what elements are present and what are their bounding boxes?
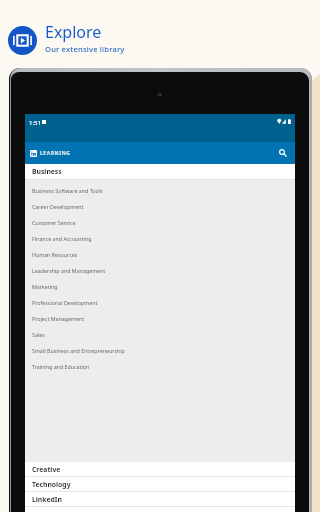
button[interactable]: Customer Service bbox=[25, 214, 295, 230]
staticText: Business Software and Tools bbox=[32, 187, 103, 194]
button[interactable]: LinkedIn bbox=[25, 492, 295, 507]
button[interactable]: Marketing bbox=[25, 278, 295, 294]
staticText: Training and Education bbox=[32, 363, 90, 370]
staticText: Career Development bbox=[32, 203, 84, 210]
staticText: Customer Service bbox=[32, 219, 76, 226]
staticText: Creative bbox=[32, 465, 61, 474]
staticText: Business bbox=[32, 167, 62, 176]
staticText: Project Management bbox=[32, 315, 85, 322]
button[interactable]: Business bbox=[25, 164, 295, 180]
button[interactable]: Project Management bbox=[25, 310, 295, 326]
button[interactable]: Training and Education bbox=[25, 358, 295, 374]
button[interactable]: Human Resources bbox=[25, 246, 295, 262]
button[interactable]: Professional Development bbox=[25, 294, 295, 310]
staticText: 1:51 bbox=[29, 119, 41, 127]
staticText: Human Resources bbox=[32, 251, 78, 258]
staticText: Finance and Accounting bbox=[32, 235, 92, 242]
button[interactable]: Technology bbox=[25, 477, 295, 492]
staticText: Our extensive library bbox=[45, 44, 125, 54]
button[interactable]: Explore bbox=[8, 26, 37, 55]
button[interactable]: Career Development bbox=[25, 198, 295, 214]
staticText: Professional Development bbox=[32, 299, 98, 306]
button[interactable]: Sales bbox=[25, 326, 295, 342]
button[interactable]: Creative bbox=[25, 462, 295, 477]
staticText: Marketing bbox=[32, 283, 58, 290]
staticText: LinkedIn bbox=[32, 495, 62, 504]
staticText: Explore bbox=[45, 21, 102, 43]
staticText: Leadership and Management bbox=[32, 267, 106, 274]
button[interactable]: Leadership and Management bbox=[25, 262, 295, 278]
staticText: Technology bbox=[32, 480, 71, 489]
staticText: Small Business and Entrepreneurship bbox=[32, 347, 125, 354]
button[interactable]: Business Software and Tools bbox=[25, 182, 295, 198]
staticText: Sales bbox=[32, 331, 45, 338]
button[interactable]: Finance and Accounting bbox=[25, 230, 295, 246]
staticText: LEARNING bbox=[40, 150, 71, 157]
button[interactable]: Search bbox=[275, 145, 291, 161]
button[interactable]: Small Business and Entrepreneurship bbox=[25, 342, 295, 358]
